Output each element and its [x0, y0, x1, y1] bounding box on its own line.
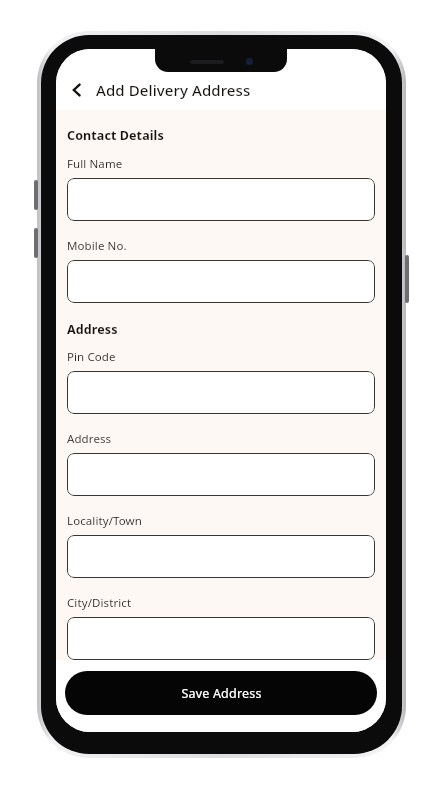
button[interactable] — [67, 371, 375, 414]
staticText: Save Address — [181, 685, 262, 702]
button[interactable] — [67, 617, 375, 660]
button[interactable]: Back — [64, 77, 90, 103]
button[interactable]: Save Address — [65, 671, 377, 715]
button[interactable] — [67, 178, 375, 221]
staticText: Contact Details — [67, 127, 164, 144]
staticText: Locality/Town — [67, 513, 142, 529]
button[interactable] — [67, 453, 375, 496]
staticText: Address — [67, 321, 118, 338]
staticText: Mobile No. — [67, 238, 127, 254]
staticText: Full Name — [67, 156, 123, 172]
button[interactable] — [67, 535, 375, 578]
button[interactable] — [67, 260, 375, 303]
staticText: Pin Code — [67, 349, 116, 365]
staticText: Address — [67, 431, 112, 447]
staticText: Add Delivery Address — [96, 80, 251, 100]
staticText: City/District — [67, 595, 132, 611]
